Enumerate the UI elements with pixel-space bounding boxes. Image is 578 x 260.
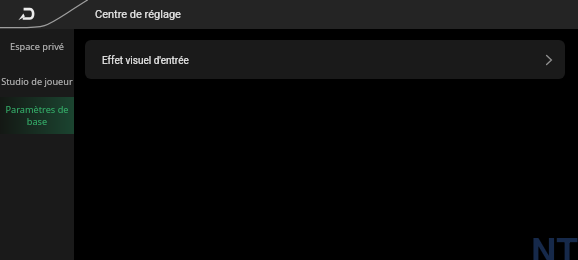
button[interactable]: Effet visuel d'entrée [85, 40, 565, 79]
other: Open [546, 55, 552, 65]
staticText: Studio de joueur [0, 75, 74, 88]
button[interactable]: Studio de joueur [0, 65, 74, 97]
staticText: Centre de réglage [95, 8, 181, 21]
staticText: Paramètres de base [0, 103, 74, 127]
staticText: NT [531, 231, 578, 260]
button[interactable]: Paramètres de base [0, 97, 74, 134]
button[interactable]: Home [17, 6, 37, 22]
staticText: Effet visuel d'entrée [102, 55, 189, 67]
staticText: Espace privé [0, 40, 74, 53]
button[interactable]: Espace privé [0, 29, 74, 65]
